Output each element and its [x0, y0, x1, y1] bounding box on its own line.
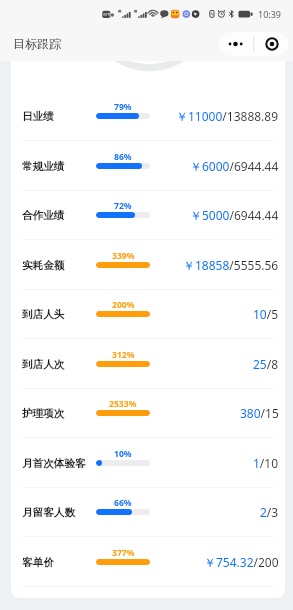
staticText: 339%: [112, 250, 135, 262]
staticText: 10/5: [253, 306, 279, 322]
button[interactable]: 到店人次: [11, 339, 285, 389]
staticText: 380/15: [240, 405, 279, 421]
staticText: 79%: [114, 101, 132, 113]
staticText: 25/8: [253, 356, 279, 372]
staticText: 66%: [114, 497, 132, 509]
button[interactable]: 常规业绩: [11, 141, 285, 191]
staticText: ￥18858/5555.56: [183, 257, 279, 273]
button[interactable]: Menu and close mini program: [219, 32, 288, 56]
staticText: 1/10: [253, 455, 279, 471]
button[interactable]: 月首次体验客: [11, 438, 285, 488]
staticText: ￥5000/6944.44: [190, 207, 279, 223]
staticText: 日业绩: [22, 110, 54, 123]
staticText: 常规业绩: [22, 160, 65, 173]
staticText: 客单价: [22, 556, 54, 569]
staticText: 到店人头: [22, 308, 65, 321]
staticText: ￥754.32/200: [204, 554, 279, 570]
staticText: 10:39: [258, 8, 282, 20]
staticText: 2/3: [260, 504, 279, 520]
button[interactable]: 合作业绩: [11, 190, 285, 240]
button[interactable]: 月留客人数: [11, 487, 285, 537]
button[interactable]: 护理项次: [11, 388, 285, 438]
staticText: 目标跟踪: [13, 36, 61, 51]
staticText: ￥11000/13888.89: [176, 108, 279, 124]
staticText: 200%: [112, 299, 135, 311]
staticText: 10%: [114, 448, 132, 460]
staticText: 377%: [112, 547, 135, 559]
staticText: 合作业绩: [22, 209, 65, 222]
staticText: 2533%: [109, 398, 137, 410]
button[interactable]: 到店人头: [11, 289, 285, 339]
staticText: 月首次体验客: [22, 457, 86, 470]
staticText: ￥6000/6944.44: [190, 158, 279, 174]
button[interactable]: 日业绩: [11, 91, 285, 141]
staticText: 72%: [114, 200, 132, 212]
staticText: 实耗金额: [22, 259, 65, 272]
staticText: 护理项次: [22, 407, 65, 420]
staticText: 312%: [112, 349, 135, 361]
staticText: 到店人次: [22, 358, 65, 371]
staticText: 月留客人数: [22, 506, 75, 519]
button[interactable]: 客单价: [11, 537, 285, 587]
button[interactable]: 实耗金额: [11, 240, 285, 290]
staticText: 86%: [114, 151, 132, 163]
